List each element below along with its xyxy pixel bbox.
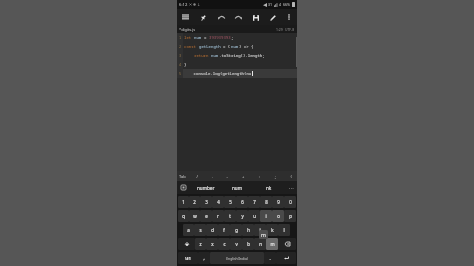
button[interactable]: . <box>208 171 216 181</box>
button[interactable]: ; <box>271 171 279 181</box>
button[interactable]: *digits.js <box>179 27 196 32</box>
staticText: x <box>211 241 214 247</box>
staticText: / <box>196 174 199 179</box>
staticText: 5 <box>229 199 232 205</box>
staticText: num <box>211 53 219 58</box>
button[interactable]: 6 <box>236 196 248 208</box>
button[interactable]: u <box>248 210 260 222</box>
staticText: f <box>223 227 225 233</box>
button[interactable]: 9 <box>272 196 284 208</box>
button[interactable]: Menu <box>180 12 191 23</box>
button[interactable]: c <box>218 238 230 250</box>
staticText: num <box>194 35 204 40</box>
staticText: c <box>223 241 226 247</box>
staticText: g <box>235 227 238 233</box>
staticText: 3 <box>205 199 208 205</box>
staticText: m <box>270 241 275 247</box>
button[interactable]: num <box>221 181 253 194</box>
button[interactable]: More options <box>284 12 294 22</box>
staticText: a <box>187 227 190 233</box>
button[interactable]: b <box>242 238 254 250</box>
button[interactable]: n <box>254 238 266 250</box>
staticText: ⋯ <box>289 185 294 191</box>
staticText: 3 <box>179 53 182 58</box>
button[interactable]: o <box>272 210 284 222</box>
button[interactable]: Enter <box>276 252 296 264</box>
button[interactable]: 1 <box>178 196 189 208</box>
staticText: z <box>199 241 202 247</box>
button[interactable]: v <box>230 238 242 250</box>
button[interactable]: d <box>206 224 218 236</box>
button[interactable]: 7 <box>248 196 260 208</box>
staticText: - <box>226 174 229 179</box>
button[interactable]: i <box>260 210 272 222</box>
button[interactable]: j <box>254 224 266 236</box>
staticText: y <box>241 213 244 219</box>
button[interactable]: Backspace <box>278 238 296 250</box>
button[interactable]: Save <box>250 12 261 23</box>
staticText: getLength <box>199 44 223 49</box>
staticText: 2 <box>179 44 182 49</box>
staticText: v <box>235 241 238 247</box>
button[interactable]: m <box>266 238 278 250</box>
button[interactable]: Edit <box>267 12 278 23</box>
staticText: 5 <box>179 71 182 76</box>
button[interactable]: z <box>195 238 206 250</box>
button[interactable]: t <box>224 210 236 222</box>
button[interactable]: 3 <box>200 196 212 208</box>
staticText: 1:29 <box>276 27 283 32</box>
button[interactable]: number <box>190 181 221 194</box>
button[interactable]: g <box>230 224 242 236</box>
staticText: n <box>259 241 262 247</box>
button[interactable]: k <box>266 224 278 236</box>
button[interactable]: h <box>242 224 254 236</box>
staticText: ; <box>274 174 277 179</box>
staticText: ↓ <box>197 2 201 7</box>
button[interactable]: More suggestions <box>285 181 297 194</box>
staticText: o <box>277 213 280 219</box>
button[interactable]: Pin <box>198 12 209 23</box>
staticText: 2 <box>193 199 196 205</box>
button[interactable]: Undo <box>216 12 227 23</box>
staticText: i <box>265 213 267 219</box>
staticText: 1 <box>182 199 185 205</box>
button[interactable]: e <box>200 210 212 222</box>
button[interactable]: f <box>218 224 230 236</box>
button[interactable]: a <box>183 224 194 236</box>
button[interactable]: l <box>278 224 290 236</box>
button[interactable]: Tab <box>179 174 186 179</box>
button[interactable]: p <box>284 210 296 222</box>
button[interactable]: . <box>264 252 276 264</box>
staticText: const <box>184 44 199 49</box>
button[interactable]: nk <box>253 181 285 194</box>
button[interactable]: 5 <box>224 196 236 208</box>
button[interactable]: : <box>255 171 263 181</box>
button[interactable]: Redo <box>233 12 244 23</box>
staticText: ; <box>231 35 234 40</box>
button[interactable]: 2 <box>189 196 200 208</box>
button[interactable]: 8 <box>260 196 272 208</box>
button[interactable]: ( <box>287 171 295 181</box>
button[interactable]: y <box>236 210 248 222</box>
button[interactable]: English(India) <box>210 252 264 264</box>
button[interactable]: q <box>178 210 189 222</box>
button[interactable]: 0 <box>284 196 296 208</box>
staticText: 393939393 <box>209 35 231 40</box>
button[interactable]: + <box>239 171 247 181</box>
button[interactable]: Clipboard <box>177 181 190 194</box>
staticText: } <box>184 62 187 67</box>
button[interactable]: s <box>194 224 206 236</box>
button[interactable]: - <box>223 171 231 181</box>
button[interactable]: / <box>193 171 201 181</box>
button[interactable]: Shift <box>178 238 195 250</box>
staticText: !#1 <box>185 256 191 261</box>
button[interactable]: x <box>206 238 218 250</box>
button[interactable]: , <box>198 252 210 264</box>
staticText: 6:12 <box>179 2 188 8</box>
button[interactable]: 4 <box>212 196 224 208</box>
button[interactable]: w <box>189 210 200 222</box>
staticText: 1 <box>179 35 182 40</box>
button[interactable]: !#1 <box>178 252 198 264</box>
button[interactable]: r <box>212 210 224 222</box>
staticText: Tab <box>179 174 186 179</box>
